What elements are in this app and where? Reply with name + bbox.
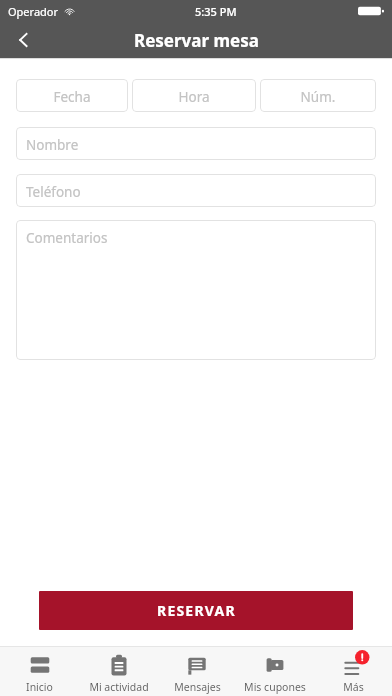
button[interactable]: Hora — [132, 79, 256, 112]
staticText: Reservar mesa — [134, 29, 259, 52]
button[interactable]: Mis cupones — [236, 647, 314, 696]
staticText: Fecha — [53, 88, 91, 103]
staticText: Nombre — [26, 136, 79, 151]
button[interactable]: Fecha — [16, 79, 128, 112]
staticText: Teléfono — [26, 183, 81, 198]
staticText: Núm. personas — [270, 88, 366, 103]
staticText: 5:35 PM — [195, 4, 237, 19]
staticText: Comentarios — [26, 229, 108, 247]
button[interactable]: RESERVAR — [39, 591, 353, 630]
button[interactable]: Mensajes — [158, 647, 236, 696]
staticText: Mensajes — [174, 680, 221, 694]
button[interactable]: Teléfono — [16, 174, 376, 207]
button[interactable]: Comentarios — [16, 220, 376, 360]
button[interactable]: Núm. personas — [260, 79, 376, 112]
button[interactable]: Inicio — [0, 647, 79, 696]
staticText: Operador — [8, 4, 59, 19]
button[interactable]: Más — [314, 647, 392, 696]
button[interactable]: Mi actividad — [79, 647, 158, 696]
staticText: Inicio — [26, 680, 53, 694]
staticText: Mis cupones — [244, 680, 306, 694]
button[interactable]: Nombre — [16, 127, 376, 160]
staticText: Más — [343, 680, 364, 694]
button[interactable]: Back — [0, 22, 48, 58]
staticText: Hora — [178, 88, 210, 103]
staticText: RESERVAR — [157, 601, 236, 620]
staticText: Mi actividad — [89, 680, 149, 694]
